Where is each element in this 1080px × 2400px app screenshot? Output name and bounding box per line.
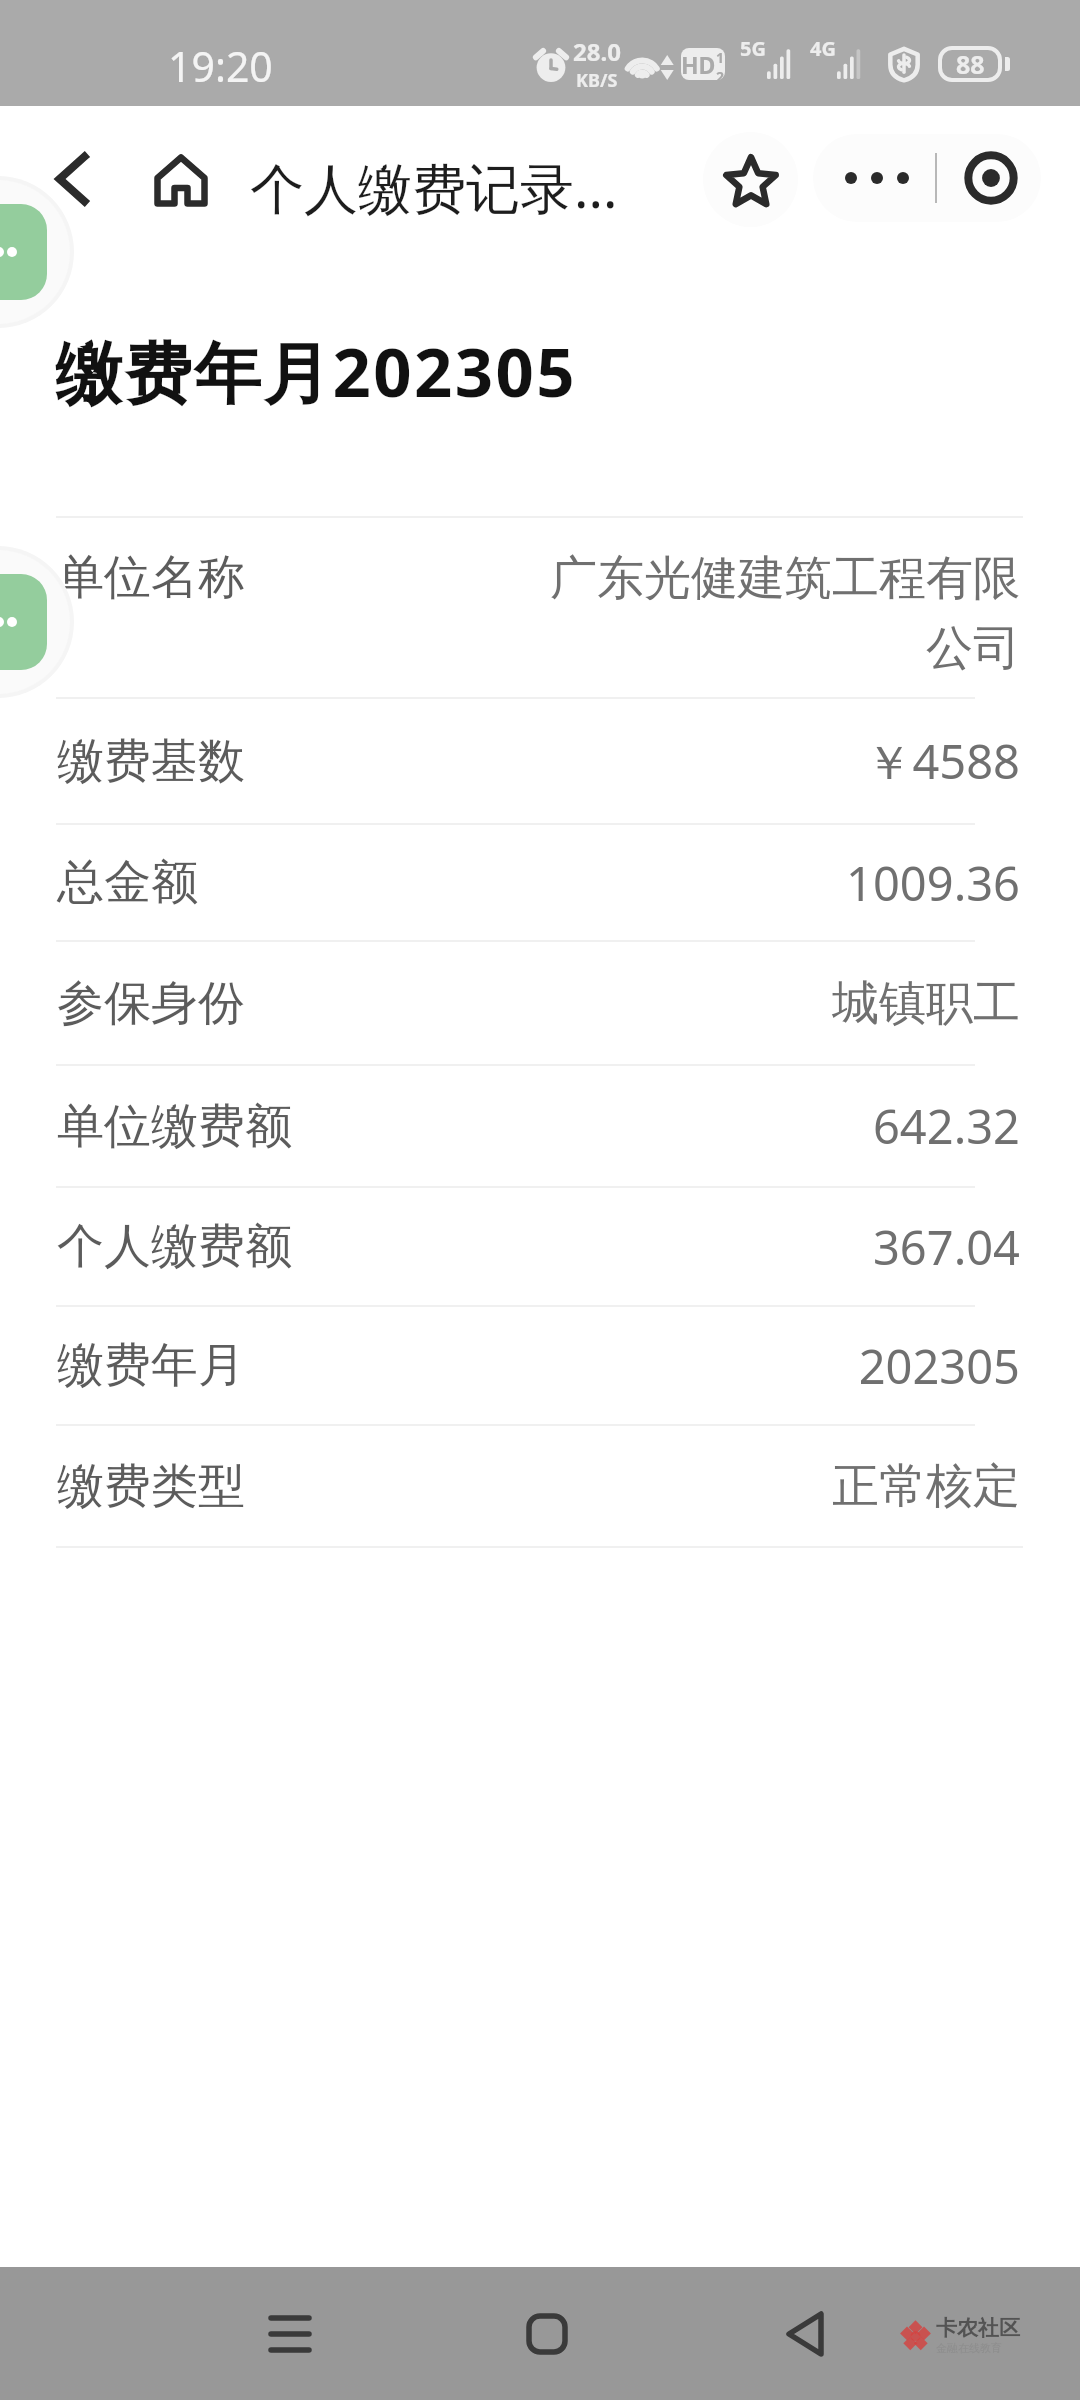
staticText: 缴费基数 xyxy=(57,732,245,791)
staticText: 正常核定 xyxy=(832,1457,1020,1516)
button[interactable]: Back xyxy=(745,2274,865,2394)
staticText: 广东光健建筑工程有限公司 xyxy=(550,549,1020,678)
button[interactable]: 个人缴费额 xyxy=(0,1188,1080,1305)
staticText: 城镇职工 xyxy=(832,974,1020,1033)
staticText: KB/S xyxy=(576,68,618,93)
button[interactable]: 参保身份 xyxy=(0,942,1080,1064)
staticText: 4G xyxy=(810,35,836,62)
staticText: ￥4588 xyxy=(865,729,1020,793)
staticText: 642.32 xyxy=(872,1094,1020,1158)
button[interactable]: Favorite xyxy=(703,132,798,227)
staticText: 个人缴费记录... xyxy=(250,150,618,224)
button[interactable]: Home xyxy=(136,135,226,225)
staticText: 金融在线教育 xyxy=(936,2341,1002,2355)
button[interactable]: More xyxy=(813,134,941,222)
staticText: 缴费年月202305 xyxy=(55,325,577,417)
staticText: 5G xyxy=(740,35,766,62)
staticText: 1009.36 xyxy=(846,851,1020,915)
staticText: 个人缴费额 xyxy=(57,1217,292,1276)
staticText: 单位缴费额 xyxy=(57,1097,292,1156)
staticText: 缴费年月 xyxy=(57,1336,245,1395)
button[interactable]: 总金额 xyxy=(0,825,1080,940)
staticText: 19:20 xyxy=(168,38,273,94)
staticText: HD xyxy=(681,49,716,80)
staticText: 202305 xyxy=(858,1334,1020,1398)
button[interactable]: 单位名称 xyxy=(0,518,1080,697)
staticText: 单位名称 xyxy=(57,548,245,607)
button[interactable]: 缴费年月 xyxy=(0,1307,1080,1424)
button[interactable]: Floating menu xyxy=(0,574,47,670)
button[interactable]: Close mini program xyxy=(941,134,1041,222)
staticText: 缴费类型 xyxy=(57,1457,245,1516)
staticText: 2 xyxy=(716,67,725,80)
button[interactable]: Back xyxy=(27,134,117,224)
button[interactable]: Floating menu xyxy=(0,204,47,300)
button[interactable]: 单位缴费额 xyxy=(0,1066,1080,1186)
staticText: 88 xyxy=(956,47,985,81)
button[interactable]: 缴费基数 xyxy=(0,699,1080,823)
staticText: 总金额 xyxy=(57,853,198,912)
staticText: 卡农社区 xyxy=(936,2315,1020,2341)
staticText: 1 xyxy=(716,48,725,67)
staticText: 参保身份 xyxy=(57,974,245,1033)
staticText: 28.0 xyxy=(573,35,621,68)
button[interactable]: Home xyxy=(487,2274,607,2394)
button[interactable]: 缴费类型 xyxy=(0,1426,1080,1546)
button[interactable]: Recent apps xyxy=(230,2274,350,2394)
staticText: 367.04 xyxy=(872,1215,1020,1279)
